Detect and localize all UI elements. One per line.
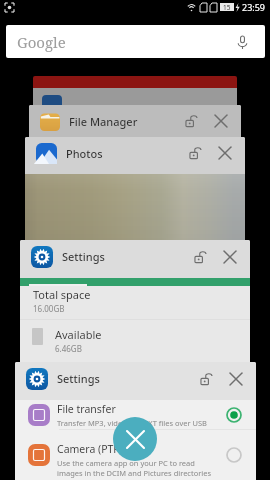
staticText: Total space — [33, 287, 91, 302]
staticText: Google — [17, 32, 66, 52]
staticText: Camera (PTP) — [57, 442, 123, 456]
staticText: Use the camera app on your PC to read — [57, 458, 195, 468]
button[interactable]: Lock task — [187, 244, 213, 270]
button[interactable]: Photos — [25, 137, 245, 240]
button[interactable]: Settings — [15, 362, 256, 480]
button[interactable]: File Manager — [29, 105, 241, 138]
button[interactable]: Settings — [20, 240, 250, 364]
staticText: 16.00GB — [33, 303, 65, 314]
staticText: images in the DCIM and Pictures director… — [57, 468, 212, 478]
button[interactable]: Available — [20, 327, 250, 354]
staticText: File transfer — [57, 402, 116, 416]
button[interactable]: Close task — [208, 108, 234, 134]
other: Screenshot — [5, 3, 14, 12]
staticText: Photos — [66, 146, 103, 161]
button[interactable]: Voice search — [234, 34, 250, 50]
staticText: 15 — [223, 3, 231, 11]
button[interactable]: File transfer — [15, 401, 256, 439]
button[interactable]: Lock task — [193, 366, 219, 392]
button[interactable]: Lock task — [182, 140, 208, 166]
button[interactable]: Lock task — [178, 108, 204, 134]
button[interactable]: Close all — [113, 417, 157, 461]
button[interactable] — [33, 88, 237, 105]
staticText: Available — [55, 327, 102, 342]
staticText: 6.46GB — [55, 343, 82, 354]
staticText: Settings — [57, 371, 100, 386]
button[interactable]: Camera (PTP) — [15, 441, 256, 479]
button[interactable]: Close task — [217, 244, 243, 270]
staticText: Transfer MP3, video and TXT files over U… — [57, 418, 207, 428]
button[interactable]: Close task — [223, 366, 249, 392]
staticText: File Manager — [69, 114, 138, 129]
button[interactable]: Close task — [212, 140, 238, 166]
button[interactable]: Google — [6, 25, 265, 58]
button[interactable] — [33, 76, 237, 105]
staticText: Settings — [62, 249, 105, 264]
staticText: 23:59 — [242, 1, 266, 13]
